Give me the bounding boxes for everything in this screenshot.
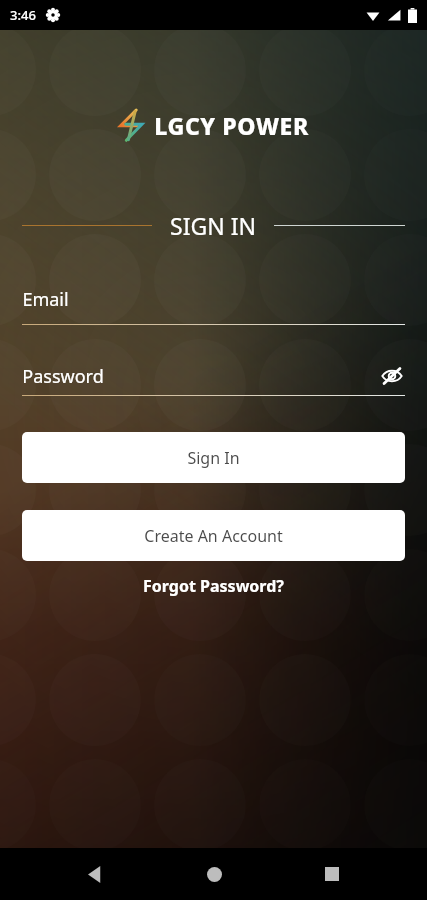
button[interactable]: Forgot Password? — [0, 575, 427, 597]
staticText: Password — [22, 364, 104, 389]
button[interactable]: Home — [190, 850, 238, 898]
button[interactable]: Back — [71, 850, 119, 898]
staticText: 3:46 — [10, 6, 36, 24]
staticText: LGCY POWER — [154, 110, 309, 141]
staticText: Create An Account — [144, 525, 283, 547]
staticText: Sign In — [187, 447, 240, 469]
staticText: Forgot Password? — [143, 575, 284, 597]
button[interactable]: Recent apps — [308, 850, 356, 898]
staticText: Email — [22, 287, 69, 312]
staticText: SIGN IN — [170, 210, 256, 241]
button[interactable]: Create An Account — [22, 510, 405, 561]
button[interactable]: Email — [22, 287, 405, 325]
button[interactable]: Show password — [379, 363, 405, 389]
button[interactable]: Sign In — [22, 432, 405, 483]
button[interactable]: Password — [22, 363, 405, 396]
